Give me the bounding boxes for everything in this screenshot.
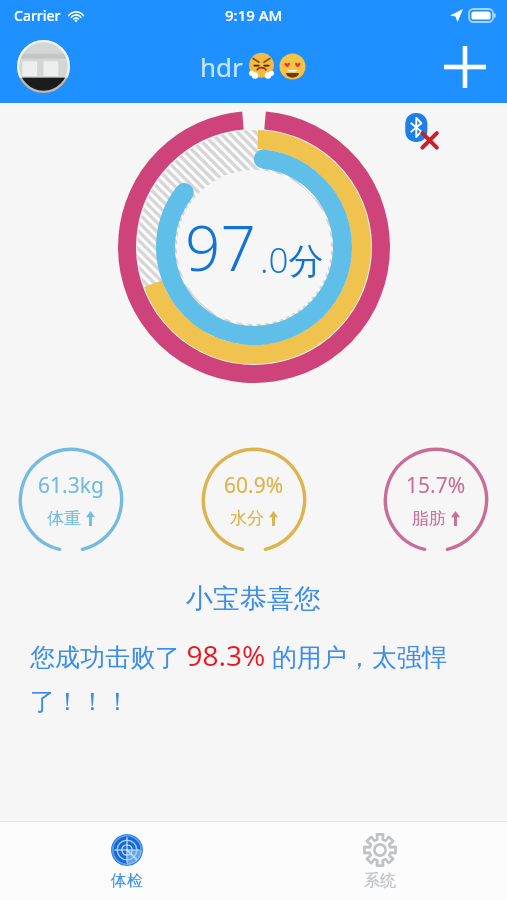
button[interactable]: 系统 <box>253 822 507 900</box>
button[interactable]: 体检 <box>0 822 253 900</box>
staticText: 脂肪 <box>412 508 446 529</box>
staticText: 体重 <box>47 508 81 529</box>
staticText: 9:19 AM <box>225 5 283 25</box>
staticText: 60.9% <box>224 471 284 500</box>
button[interactable]: 60.9% <box>200 446 308 554</box>
staticText: .0分 <box>260 236 324 284</box>
button[interactable]: 61.3kg <box>17 446 125 554</box>
button[interactable]: Add <box>439 41 491 93</box>
staticText: 61.3kg <box>38 471 104 500</box>
staticText: hdr <box>200 49 243 84</box>
button[interactable]: Bluetooth disconnected <box>403 113 441 151</box>
staticText: 97 <box>185 205 256 289</box>
button[interactable]: Profile <box>17 40 70 93</box>
staticText: 系统 <box>364 871 396 891</box>
staticText: 水分 <box>230 508 264 529</box>
button[interactable]: 15.7% <box>382 446 490 554</box>
staticText: 您成功击败了 98.3% 的用户，太强悍了！！！ <box>30 636 477 717</box>
staticText: 体检 <box>111 871 143 891</box>
staticText: 15.7% <box>406 471 466 500</box>
staticText: Carrier <box>14 6 61 25</box>
staticText: 小宝恭喜您 <box>186 582 321 616</box>
